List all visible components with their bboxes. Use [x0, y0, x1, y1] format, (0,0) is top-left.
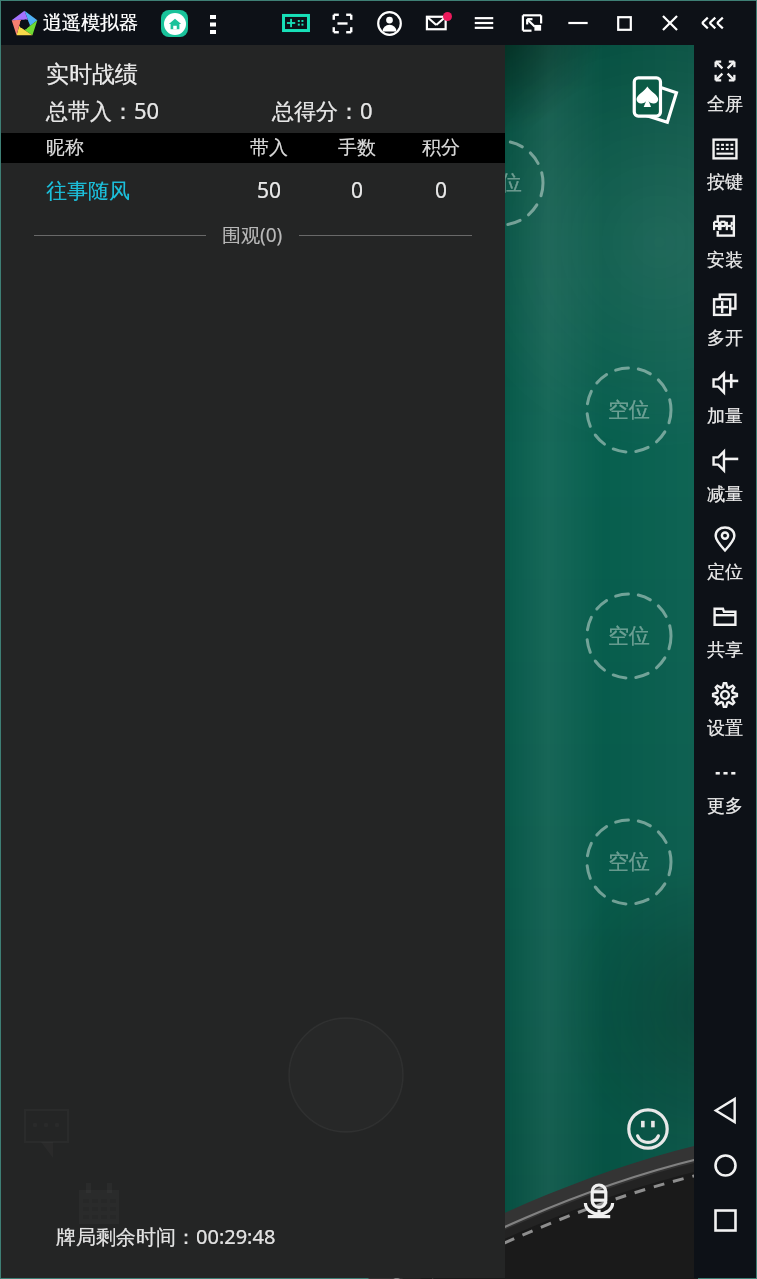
staticText: 牌局剩余时间：00:29:48: [56, 1223, 276, 1250]
button[interactable]: Close: [655, 8, 685, 38]
button[interactable]: Account: [374, 8, 404, 38]
button[interactable]: 减量: [694, 436, 756, 514]
staticText: 空位: [608, 397, 650, 423]
staticText: 全屏: [707, 93, 743, 116]
staticText: 空位: [608, 849, 650, 875]
staticText: 空位: [480, 170, 522, 196]
staticText: 空位: [608, 623, 650, 649]
button[interactable]: 按键: [694, 124, 756, 202]
button[interactable]: 多开: [694, 280, 756, 358]
button[interactable]: Menu: [469, 8, 499, 38]
button[interactable]: Home: [694, 1138, 756, 1193]
button[interactable]: Mail: [422, 8, 452, 38]
staticText: 往事随风: [46, 178, 130, 204]
staticText: 安装: [707, 249, 743, 272]
button[interactable]: 更多: [694, 748, 756, 826]
staticText: 积分: [397, 136, 485, 160]
staticText: 50: [221, 176, 317, 205]
staticText: 带入: [221, 136, 317, 160]
staticText: 减量: [707, 483, 743, 506]
button[interactable]: 设置: [694, 670, 756, 748]
staticText: 0: [317, 176, 397, 205]
staticText: 按键: [707, 171, 743, 194]
staticText: 设置: [707, 717, 743, 740]
button[interactable]: Back: [694, 1083, 756, 1138]
button[interactable]: 定位: [694, 514, 756, 592]
button[interactable]: More options: [200, 10, 226, 36]
button[interactable]: 安装: [694, 202, 756, 280]
staticText: 加量: [707, 405, 743, 428]
button[interactable]: 空位: [585, 366, 673, 454]
staticText: 总带入：50: [46, 95, 160, 125]
button[interactable]: 加量: [694, 358, 756, 436]
button[interactable]: Microphone: [579, 1181, 619, 1221]
button[interactable]: 空位: [585, 592, 673, 680]
staticText: 多开: [707, 327, 743, 350]
button[interactable]: 共享: [694, 592, 756, 670]
button[interactable]: Home app: [161, 10, 188, 37]
button[interactable]: Emoji: [624, 1105, 672, 1153]
staticText: 更多: [707, 795, 743, 818]
staticText: 共享: [707, 639, 743, 662]
staticText: 总得分：0: [272, 95, 373, 125]
button[interactable]: Collapse sidebar: [697, 8, 727, 38]
button[interactable]: Minimise: [563, 8, 593, 38]
staticText: 逍遥模拟器: [43, 11, 138, 35]
button[interactable]: Keymapping: [281, 8, 311, 38]
button[interactable]: Shrink window: [517, 8, 547, 38]
staticText: 定位: [707, 561, 743, 584]
staticText: 昵称: [46, 136, 84, 160]
button[interactable]: 空位: [457, 139, 545, 227]
staticText: 围观(0): [222, 222, 283, 248]
staticText: 手数: [317, 136, 397, 160]
staticText: 0: [397, 176, 485, 205]
button[interactable]: 空位: [585, 818, 673, 906]
button[interactable]: Screenshot: [327, 8, 357, 38]
button[interactable]: Maximise: [609, 8, 639, 38]
button[interactable]: Card history: [624, 71, 681, 128]
button[interactable]: Recents: [694, 1193, 756, 1248]
button[interactable]: 全屏: [694, 46, 756, 124]
staticText: 实时战绩: [46, 60, 138, 89]
